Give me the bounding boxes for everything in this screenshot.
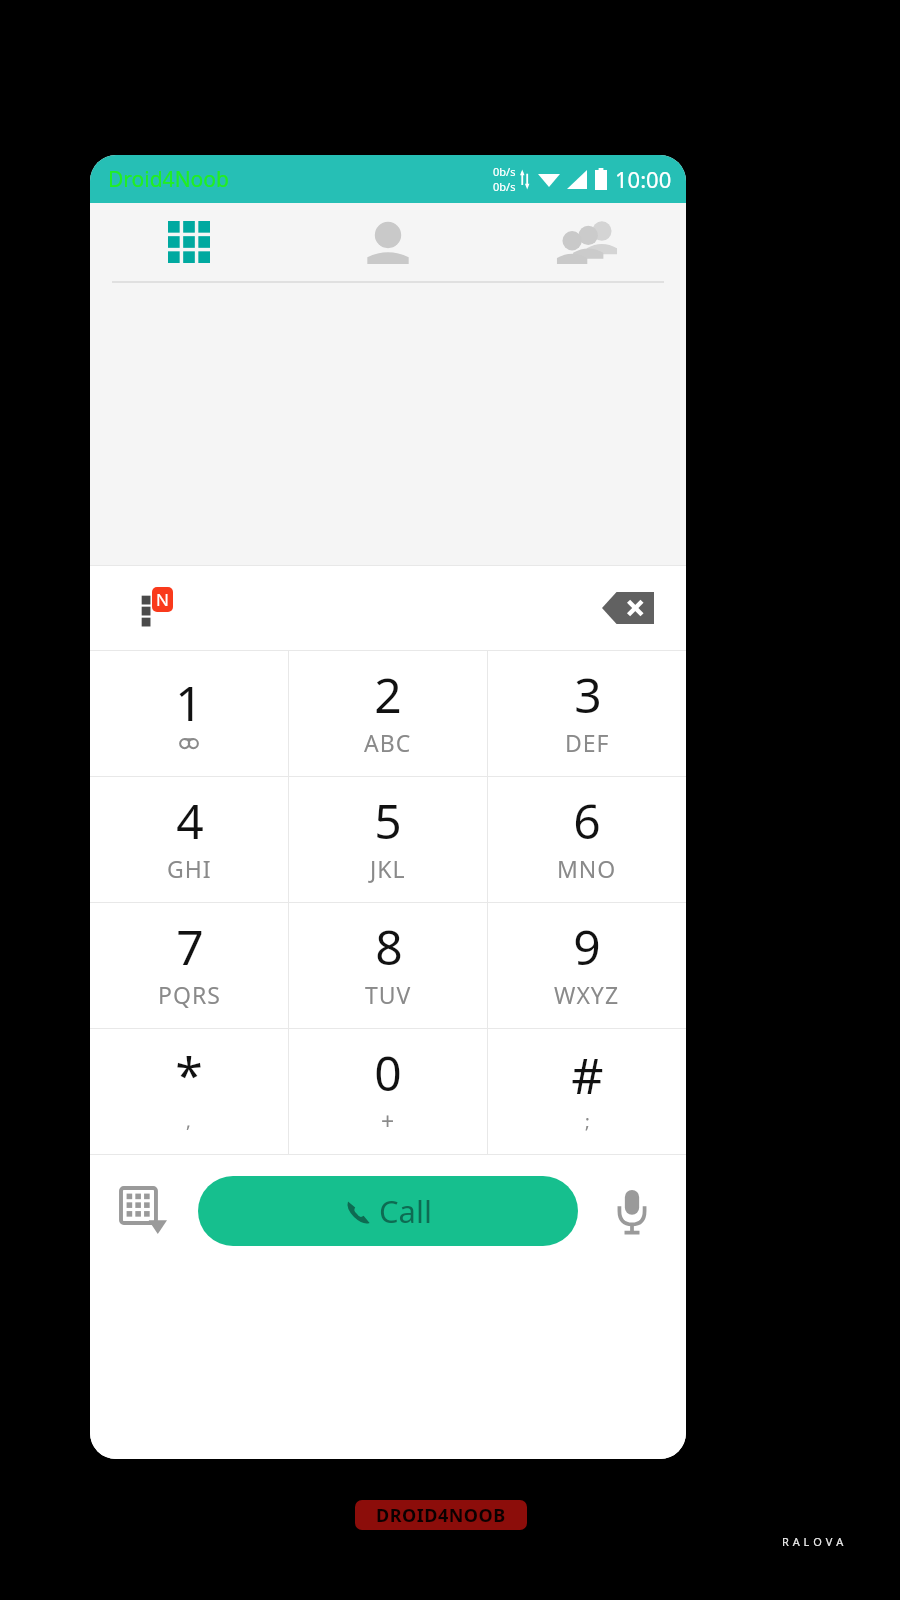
staticText: MNO xyxy=(557,853,617,884)
button[interactable]: Hide keypad xyxy=(90,1155,198,1267)
staticText: Droid4Noob xyxy=(108,165,229,194)
staticText: 3 xyxy=(574,662,602,727)
staticText: + xyxy=(381,1105,396,1136)
staticText: 0 xyxy=(374,1040,402,1105)
staticText: 0b/s xyxy=(493,179,516,194)
staticText: DEF xyxy=(565,727,610,758)
staticText: ABC xyxy=(364,727,412,758)
staticText: 7 xyxy=(176,914,204,979)
button[interactable]: 9 xyxy=(488,903,686,1028)
button[interactable]: 3 xyxy=(488,651,686,776)
staticText: N xyxy=(156,588,169,611)
staticText: TUV xyxy=(365,979,412,1010)
button[interactable]: Groups tab xyxy=(487,203,686,281)
button[interactable]: 6 xyxy=(488,777,686,902)
staticText: Call xyxy=(379,1190,432,1232)
staticText: 2 xyxy=(374,662,402,727)
staticText: , xyxy=(186,1109,192,1134)
staticText: WXYZ xyxy=(554,979,620,1010)
staticText: PQRS xyxy=(158,979,221,1010)
staticText: 10:00 xyxy=(615,164,672,194)
button[interactable]: 5 xyxy=(289,777,487,902)
staticText: 4 xyxy=(176,788,204,853)
staticText: 5 xyxy=(374,788,402,853)
staticText: GHI xyxy=(167,853,212,884)
button[interactable]: * xyxy=(90,1029,288,1154)
button[interactable]: Call xyxy=(198,1176,578,1246)
staticText: JKL xyxy=(370,853,406,884)
button[interactable]: Contacts tab xyxy=(288,203,487,281)
button[interactable]: More options xyxy=(130,584,178,632)
button[interactable]: 0 xyxy=(289,1029,487,1154)
button[interactable]: # xyxy=(488,1029,686,1154)
staticText: R A L O V A xyxy=(782,1534,844,1549)
staticText: * xyxy=(175,1041,203,1109)
button[interactable]: 4 xyxy=(90,777,288,902)
button[interactable]: Backspace xyxy=(600,587,656,629)
staticText: 6 xyxy=(573,788,601,853)
staticText: 9 xyxy=(573,914,601,979)
staticText: ; xyxy=(585,1109,591,1134)
staticText: 1 xyxy=(175,670,203,735)
staticText: # xyxy=(571,1041,604,1109)
staticText: 8 xyxy=(375,914,403,979)
staticText: DROID4NOOB xyxy=(376,1503,506,1528)
button[interactable]: Voice search xyxy=(578,1155,686,1267)
button[interactable]: Keypad tab xyxy=(90,203,288,281)
button[interactable]: 2 xyxy=(289,651,487,776)
button[interactable]: 1 xyxy=(90,651,288,776)
button[interactable]: 7 xyxy=(90,903,288,1028)
button[interactable]: 8 xyxy=(289,903,487,1028)
staticText: 0b/s xyxy=(493,164,516,179)
